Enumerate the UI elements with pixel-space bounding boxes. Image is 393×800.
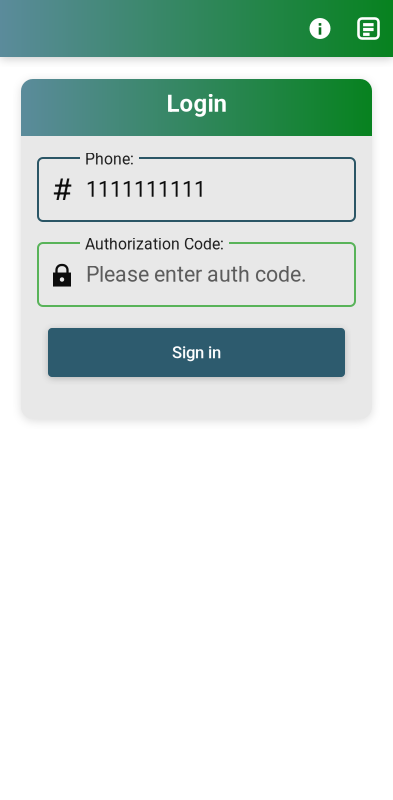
staticText: 1111111111: [86, 177, 206, 202]
button[interactable]: Terms of service: [344, 0, 393, 57]
staticText: #: [52, 171, 72, 208]
staticText: Phone:: [85, 150, 134, 168]
button[interactable]: Information: [296, 0, 344, 57]
staticText: Authorization Code:: [85, 235, 224, 253]
staticText: Login: [166, 89, 226, 117]
button[interactable]: Sign in: [48, 328, 345, 377]
staticText: Sign in: [172, 343, 221, 362]
staticText: Please enter auth code.: [86, 262, 307, 287]
